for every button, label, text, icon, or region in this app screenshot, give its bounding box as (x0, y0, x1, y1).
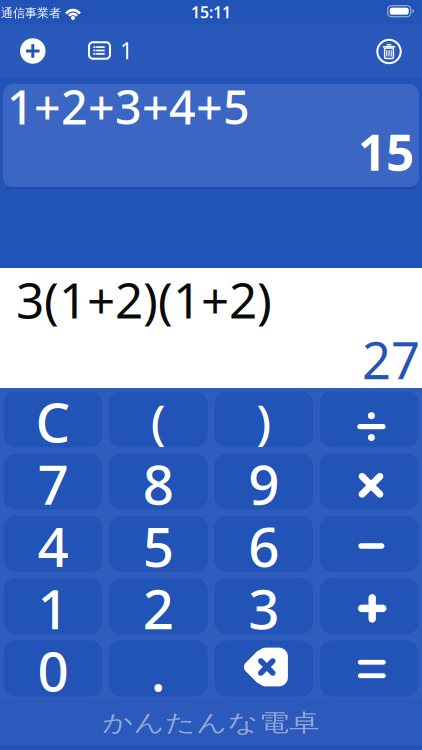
staticText: ) (256, 389, 271, 453)
staticText: . (151, 634, 166, 707)
button[interactable]: ) (214, 391, 313, 447)
button[interactable]: Equals (320, 640, 418, 696)
button[interactable]: 3 (214, 578, 313, 634)
staticText: ( (151, 389, 166, 453)
button[interactable]: 2 (109, 578, 208, 634)
staticText: 6 (248, 509, 279, 582)
button[interactable]: Divide (320, 391, 418, 447)
staticText: 15 (358, 119, 414, 184)
button[interactable]: . (109, 640, 208, 696)
staticText: 4 (37, 509, 68, 582)
staticText: かんたんな電卓 (110, 706, 311, 740)
button[interactable]: Backspace (214, 640, 313, 696)
button[interactable]: 8 (109, 453, 208, 509)
staticText: 27 (362, 326, 420, 393)
staticText: 2 (143, 572, 174, 644)
button[interactable]: 9 (214, 453, 313, 509)
button[interactable]: History (88, 33, 133, 67)
staticText: 9 (248, 447, 279, 520)
button[interactable]: Minus (320, 516, 418, 572)
button[interactable]: ( (109, 391, 208, 447)
button[interactable]: Delete (376, 38, 402, 64)
staticText: 通信事業者 (1, 6, 61, 20)
button[interactable]: 5 (109, 516, 208, 572)
staticText: 15:11 (191, 1, 231, 23)
staticText: 1+2+3+4+5 (7, 75, 250, 137)
button[interactable]: Plus (320, 578, 418, 634)
button[interactable]: 6 (214, 516, 313, 572)
staticText: 8 (143, 447, 174, 520)
staticText: 1 (37, 572, 68, 644)
button[interactable]: New calculation (20, 38, 45, 64)
staticText: C (35, 385, 70, 457)
button[interactable]: 0 (3, 640, 102, 696)
staticText: 0 (37, 634, 68, 707)
button[interactable]: 7 (3, 453, 102, 509)
button[interactable]: C (3, 391, 102, 447)
button[interactable]: 1 (3, 578, 102, 634)
staticText: 1 (120, 35, 133, 65)
staticText: 5 (143, 509, 174, 582)
staticText: 7 (37, 447, 68, 520)
button[interactable]: 4 (3, 516, 102, 572)
button[interactable]: Multiply (320, 453, 418, 509)
staticText: 3(1+2)(1+2) (16, 266, 272, 332)
staticText: 3 (248, 572, 279, 644)
